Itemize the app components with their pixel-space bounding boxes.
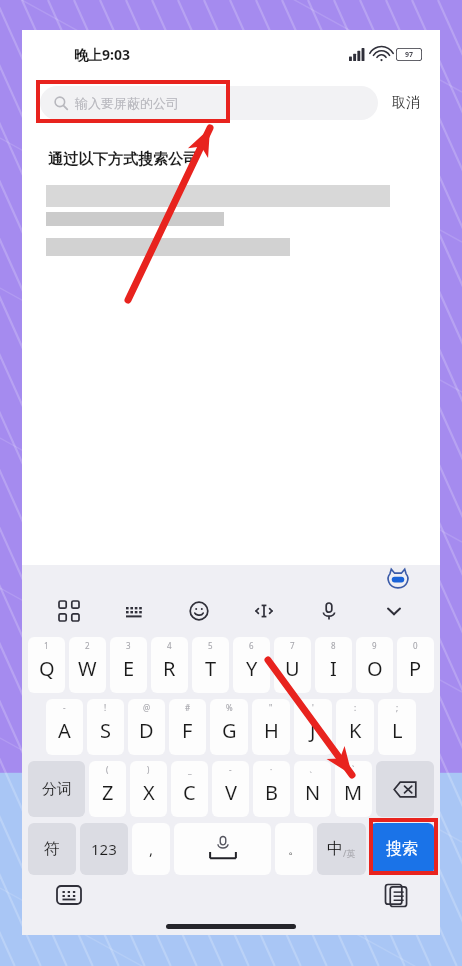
button[interactable]: Switch keyboard [56, 885, 82, 905]
button[interactable]: 6 [233, 637, 270, 693]
staticText: ; [396, 702, 399, 713]
staticText: R [163, 655, 176, 682]
staticText: 0 [413, 640, 418, 651]
button[interactable]: 8 [315, 637, 352, 693]
staticText: J [310, 717, 316, 744]
button[interactable]: 。 [275, 823, 313, 875]
button[interactable]: - [46, 699, 83, 755]
staticText: 9 [372, 640, 377, 651]
button[interactable]: 输入要屏蔽的公司 [40, 86, 378, 120]
button[interactable]: 1 [28, 637, 65, 693]
staticText: Y [246, 655, 258, 682]
staticText: X [143, 779, 155, 806]
staticText: _ [188, 764, 192, 775]
staticText: I [330, 655, 337, 682]
button[interactable]: 7 [274, 637, 311, 693]
button[interactable]: Text cursor [231, 591, 296, 631]
staticText: - [63, 702, 66, 713]
button[interactable]: ` [335, 761, 372, 817]
staticText: W [78, 655, 97, 682]
staticText: 97 [405, 50, 414, 60]
staticText: L [392, 717, 403, 744]
staticText: 、 [309, 764, 317, 774]
staticText: A [58, 717, 71, 744]
button[interactable]: - [212, 761, 249, 817]
button[interactable]: # [169, 699, 206, 755]
staticText: 7 [290, 640, 295, 651]
staticText: 。 [288, 841, 301, 857]
staticText: 2 [85, 640, 90, 651]
staticText: # [185, 702, 191, 713]
staticText: 通过以下方式搜索公司 [48, 150, 198, 169]
button[interactable]: 4 [151, 637, 188, 693]
button[interactable]: % [210, 699, 248, 755]
staticText: 8 [331, 640, 336, 651]
staticText: 中 [327, 839, 343, 859]
staticText: Q [39, 655, 55, 682]
button[interactable]: ) [130, 761, 167, 817]
staticText: 6 [249, 640, 254, 651]
button[interactable]: · [253, 761, 290, 817]
staticText: @ [143, 702, 151, 713]
staticText: K [349, 717, 362, 744]
staticText: 搜索 [386, 839, 418, 859]
staticText: 符 [44, 839, 60, 859]
button[interactable]: " [252, 699, 290, 755]
button[interactable]: Apps [36, 591, 101, 631]
button[interactable]: Clipboard [384, 883, 408, 907]
button[interactable]: 123 [80, 823, 128, 875]
staticText: ( [106, 764, 109, 775]
staticText: 4 [167, 640, 172, 651]
staticText: G [222, 717, 237, 744]
staticText: ` [352, 764, 355, 775]
button[interactable]: 2 [69, 637, 106, 693]
staticText: ! [104, 702, 107, 713]
staticText: 3 [126, 640, 131, 651]
button[interactable]: 取消 [378, 94, 422, 112]
button[interactable]: _ [171, 761, 208, 817]
staticText: N [305, 779, 321, 806]
staticText: E [123, 655, 135, 682]
staticText: M [344, 779, 363, 806]
button[interactable]: Keyboard layout [101, 591, 166, 631]
button[interactable]: 、 [294, 761, 331, 817]
staticText: P [409, 655, 422, 682]
button[interactable]: , [132, 823, 170, 875]
staticText: B [265, 779, 278, 806]
button[interactable]: @ [128, 699, 165, 755]
staticText: 分词 [42, 780, 72, 799]
button[interactable]: 0 [397, 637, 434, 693]
staticText: T [205, 655, 217, 682]
staticText: 5 [208, 640, 213, 651]
button[interactable]: ; [378, 699, 416, 755]
staticText: - [229, 764, 232, 775]
staticText: H [264, 717, 279, 744]
button[interactable]: Emoji [166, 591, 231, 631]
button[interactable]: Collapse [361, 591, 426, 631]
button[interactable]: : [336, 699, 374, 755]
staticText: : [354, 702, 357, 713]
button[interactable]: 分词 [28, 761, 85, 817]
button[interactable]: 3 [110, 637, 147, 693]
button[interactable]: ' [294, 699, 332, 755]
button[interactable]: AI assistant [386, 567, 410, 589]
button[interactable]: 搜索 [370, 823, 434, 875]
button[interactable]: 中 [317, 823, 366, 875]
button[interactable]: 符 [28, 823, 76, 875]
staticText: 取消 [392, 94, 420, 112]
staticText: U [285, 655, 300, 682]
staticText: ) [147, 764, 150, 775]
staticText: ' [312, 702, 314, 713]
staticText: 晚上9:03 [74, 45, 130, 64]
button[interactable]: Voice input [296, 591, 361, 631]
staticText: 123 [91, 839, 117, 859]
button[interactable]: ! [87, 699, 124, 755]
staticText: , [149, 839, 154, 859]
button[interactable]: 9 [356, 637, 393, 693]
staticText: · [270, 764, 273, 775]
button[interactable]: ( [89, 761, 126, 817]
button[interactable]: Space [174, 823, 271, 875]
staticText: /英 [343, 847, 356, 859]
button[interactable]: Backspace [376, 761, 434, 817]
button[interactable]: 5 [192, 637, 229, 693]
